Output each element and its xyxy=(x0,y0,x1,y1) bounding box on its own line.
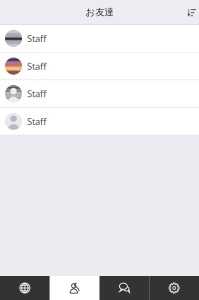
staticText: Staff xyxy=(27,32,46,45)
button[interactable]: Discover xyxy=(0,276,50,300)
button[interactable]: Staff xyxy=(0,53,199,80)
staticText: お友達 xyxy=(85,6,113,18)
staticText: Staff xyxy=(27,60,46,72)
button[interactable]: Sort xyxy=(180,1,199,23)
button[interactable]: Settings xyxy=(149,276,199,300)
button[interactable]: Chats xyxy=(99,276,149,300)
button[interactable]: Staff xyxy=(0,108,199,135)
button[interactable]: Friends xyxy=(50,276,100,300)
staticText: Staff xyxy=(27,87,46,100)
button[interactable]: Staff xyxy=(0,80,199,108)
staticText: Staff xyxy=(27,115,46,127)
button[interactable]: Staff xyxy=(0,25,199,53)
